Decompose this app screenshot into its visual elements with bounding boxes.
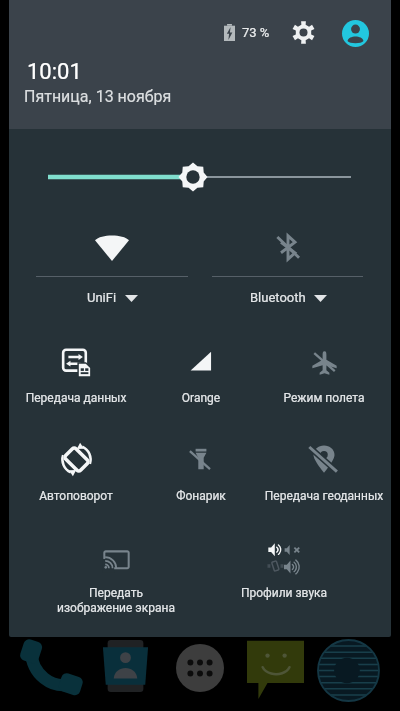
button[interactable]: UniFi	[24, 222, 200, 314]
button[interactable]: Bluetooth	[200, 222, 376, 314]
staticText: Фонарик	[139, 489, 263, 503]
button[interactable]: All apps	[168, 638, 232, 698]
button[interactable]: Фонарик	[139, 436, 263, 522]
button[interactable]: Settings	[287, 16, 319, 48]
button[interactable]: Messages	[239, 631, 312, 705]
button[interactable]: Режим полета	[262, 341, 386, 424]
button[interactable]: Contacts	[94, 634, 157, 698]
button[interactable]: Передача геоданных	[262, 436, 386, 522]
staticText: 10:01	[27, 59, 82, 85]
staticText: Передача геоданных	[262, 489, 386, 503]
staticText: Пятница, 13 ноября	[24, 87, 172, 106]
staticText: Orange	[139, 391, 263, 405]
staticText: Режим полета	[262, 391, 386, 405]
button[interactable]: Передать изображение экрана	[54, 537, 178, 619]
staticText: Профили звука	[222, 586, 346, 600]
button[interactable]: Orange	[139, 340, 263, 424]
staticText: UniFi	[87, 290, 117, 305]
button[interactable]: Phone	[12, 631, 89, 706]
button[interactable]: Передача данных	[14, 340, 138, 424]
staticText: Автоповорот	[14, 489, 138, 503]
button[interactable]: Автоповорот	[14, 436, 138, 522]
staticText: Bluetooth	[250, 290, 306, 305]
staticText: Передать изображение экрана	[54, 586, 178, 615]
button[interactable]: Профили звука	[222, 534, 346, 619]
button[interactable]: User profile	[339, 17, 371, 49]
staticText: Передача данных	[14, 391, 138, 405]
staticText: 73 %	[242, 25, 270, 40]
button[interactable]: Browser	[309, 634, 388, 707]
